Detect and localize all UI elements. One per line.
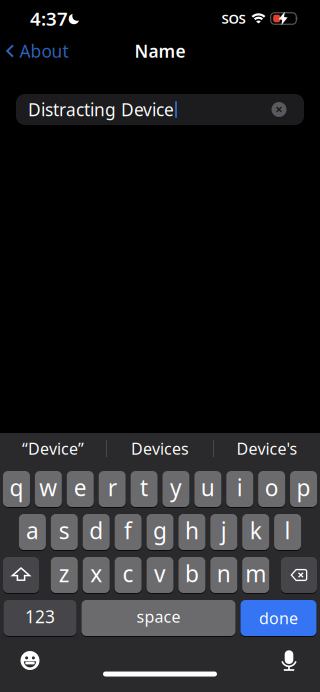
button[interactable]: i (226, 471, 253, 507)
button[interactable]: Device's (214, 438, 320, 459)
button[interactable]: “Device” (0, 438, 106, 459)
staticText: u (201, 472, 215, 502)
staticText: About (19, 39, 68, 62)
button[interactable]: a (19, 514, 46, 550)
button[interactable]: m (242, 557, 269, 593)
button[interactable]: f (115, 514, 142, 550)
button[interactable]: Delete (281, 557, 317, 593)
staticText: SOS (221, 10, 245, 27)
staticText: 123 (25, 605, 55, 628)
button[interactable]: z (51, 557, 78, 593)
button[interactable]: t (130, 471, 157, 507)
staticText: q (9, 472, 23, 502)
staticText: f (124, 515, 132, 545)
button[interactable]: About (6, 39, 68, 62)
button[interactable]: space (81, 600, 235, 636)
staticText: p (297, 472, 311, 502)
staticText: Distracting Device (28, 98, 174, 121)
staticText: n (217, 558, 231, 588)
staticText: l (285, 515, 291, 545)
button[interactable]: r (99, 471, 126, 507)
staticText: h (185, 515, 199, 545)
staticText: j (221, 515, 227, 545)
staticText: done (259, 607, 298, 629)
staticText: v (154, 558, 166, 588)
button[interactable]: o (258, 471, 285, 507)
button[interactable]: c (115, 557, 142, 593)
staticText: i (237, 472, 243, 502)
staticText: b (185, 558, 199, 588)
staticText: y (170, 472, 182, 502)
staticText: 4:37 (30, 6, 68, 31)
staticText: z (59, 558, 70, 588)
button[interactable]: x (83, 557, 110, 593)
staticText: space (136, 606, 180, 627)
button[interactable]: h (178, 514, 205, 550)
button[interactable]: d (83, 514, 110, 550)
staticText: g (153, 515, 167, 545)
button[interactable]: p (290, 471, 317, 507)
staticText: “Device” (22, 438, 84, 459)
button[interactable]: s (51, 514, 78, 550)
staticText: t (140, 472, 148, 502)
button[interactable]: done (240, 600, 316, 636)
staticText: k (250, 515, 262, 545)
button[interactable]: Clear text (271, 102, 286, 117)
button[interactable]: g (146, 514, 173, 550)
button[interactable]: w (35, 471, 62, 507)
button[interactable]: n (210, 557, 237, 593)
button[interactable]: e (67, 471, 94, 507)
staticText: x (90, 558, 102, 588)
staticText: m (245, 558, 266, 588)
button[interactable]: v (146, 557, 173, 593)
button[interactable]: u (194, 471, 221, 507)
button[interactable]: 123 (3, 600, 76, 636)
staticText: Device's (236, 438, 297, 459)
staticText: d (89, 515, 103, 545)
button[interactable]: Emoji (20, 651, 39, 670)
staticText: s (59, 515, 70, 545)
button[interactable]: Dictation (281, 649, 297, 671)
button[interactable]: Devices (107, 438, 213, 459)
staticText: e (74, 472, 87, 502)
button[interactable]: k (242, 514, 269, 550)
staticText: w (39, 472, 57, 502)
button[interactable]: j (210, 514, 237, 550)
button[interactable]: q (3, 471, 30, 507)
button[interactable]: Distracting Device (16, 94, 304, 125)
staticText: Name (134, 39, 185, 62)
staticText: a (26, 515, 39, 545)
staticText: o (265, 472, 279, 502)
button[interactable]: b (178, 557, 205, 593)
button[interactable]: l (274, 514, 301, 550)
button[interactable]: y (162, 471, 189, 507)
staticText: Devices (131, 438, 189, 459)
staticText: c (123, 558, 134, 588)
staticText: r (108, 472, 117, 502)
button[interactable]: Shift (3, 557, 39, 593)
